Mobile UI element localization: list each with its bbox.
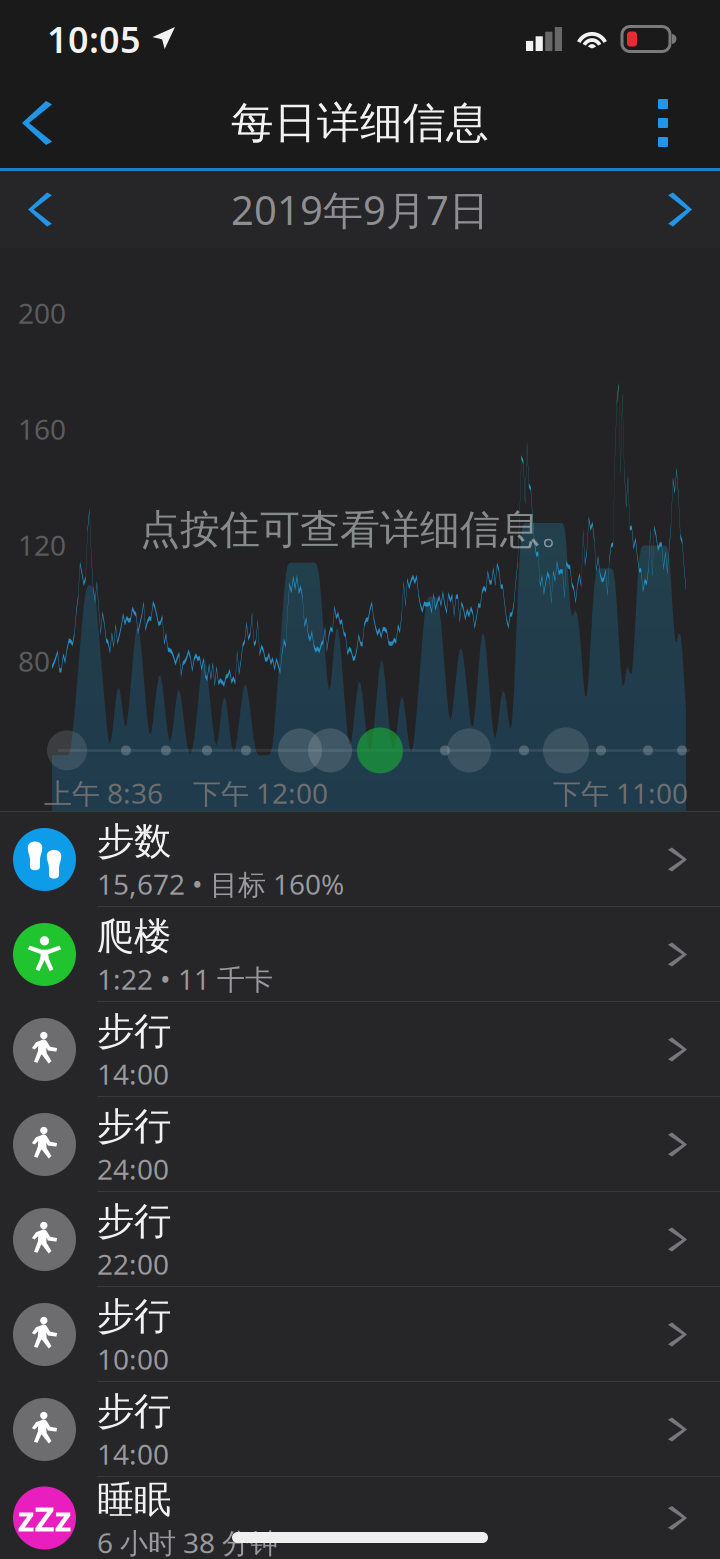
- staticText: 14:00: [97, 1435, 169, 1472]
- staticText: zZz: [17, 1495, 71, 1541]
- staticText: 步行: [97, 1388, 171, 1434]
- button[interactable]: Next day: [639, 171, 720, 248]
- button[interactable]: 步行: [0, 1287, 720, 1382]
- staticText: 200: [18, 294, 66, 332]
- staticText: 160: [18, 410, 66, 448]
- staticText: 15,672 • 目标 160%: [97, 865, 344, 902]
- staticText: 步行: [97, 1008, 171, 1054]
- staticText: 2019年9月7日: [231, 183, 489, 236]
- staticText: 步行: [97, 1103, 171, 1149]
- staticText: 10:00: [97, 1340, 169, 1377]
- staticText: 步行: [97, 1198, 171, 1244]
- staticText: 点按住可查看详细信息。: [140, 505, 580, 554]
- button[interactable]: 步数: [0, 812, 720, 907]
- staticText: 爬楼: [97, 913, 171, 959]
- button[interactable]: More options: [614, 78, 720, 168]
- button[interactable]: 爬楼: [0, 907, 720, 1002]
- button[interactable]: 步行: [0, 1097, 720, 1192]
- staticText: 80: [18, 642, 50, 680]
- staticText: 22:00: [97, 1245, 169, 1282]
- staticText: 14:00: [97, 1055, 169, 1092]
- button[interactable]: Back: [0, 78, 82, 168]
- button[interactable]: 步行: [0, 1192, 720, 1287]
- staticText: 下午 11:00: [553, 774, 688, 812]
- button[interactable]: Previous day: [0, 171, 81, 248]
- staticText: 10:05: [47, 15, 141, 63]
- staticText: 120: [18, 526, 66, 564]
- button[interactable]: zZz: [0, 1477, 720, 1559]
- staticText: 步行: [97, 1293, 171, 1339]
- staticText: 1:22 • 11 千卡: [97, 960, 273, 997]
- staticText: 下午 12:00: [193, 774, 328, 812]
- staticText: 24:00: [97, 1150, 169, 1187]
- staticText: 步数: [97, 818, 171, 864]
- button[interactable]: 步行: [0, 1382, 720, 1477]
- staticText: 睡眠: [97, 1477, 171, 1523]
- staticText: 每日详细信息: [231, 97, 489, 149]
- staticText: 6 小时 38 分钟: [97, 1524, 278, 1559]
- button[interactable]: 步行: [0, 1002, 720, 1097]
- staticText: 上午 8:36: [44, 774, 163, 812]
